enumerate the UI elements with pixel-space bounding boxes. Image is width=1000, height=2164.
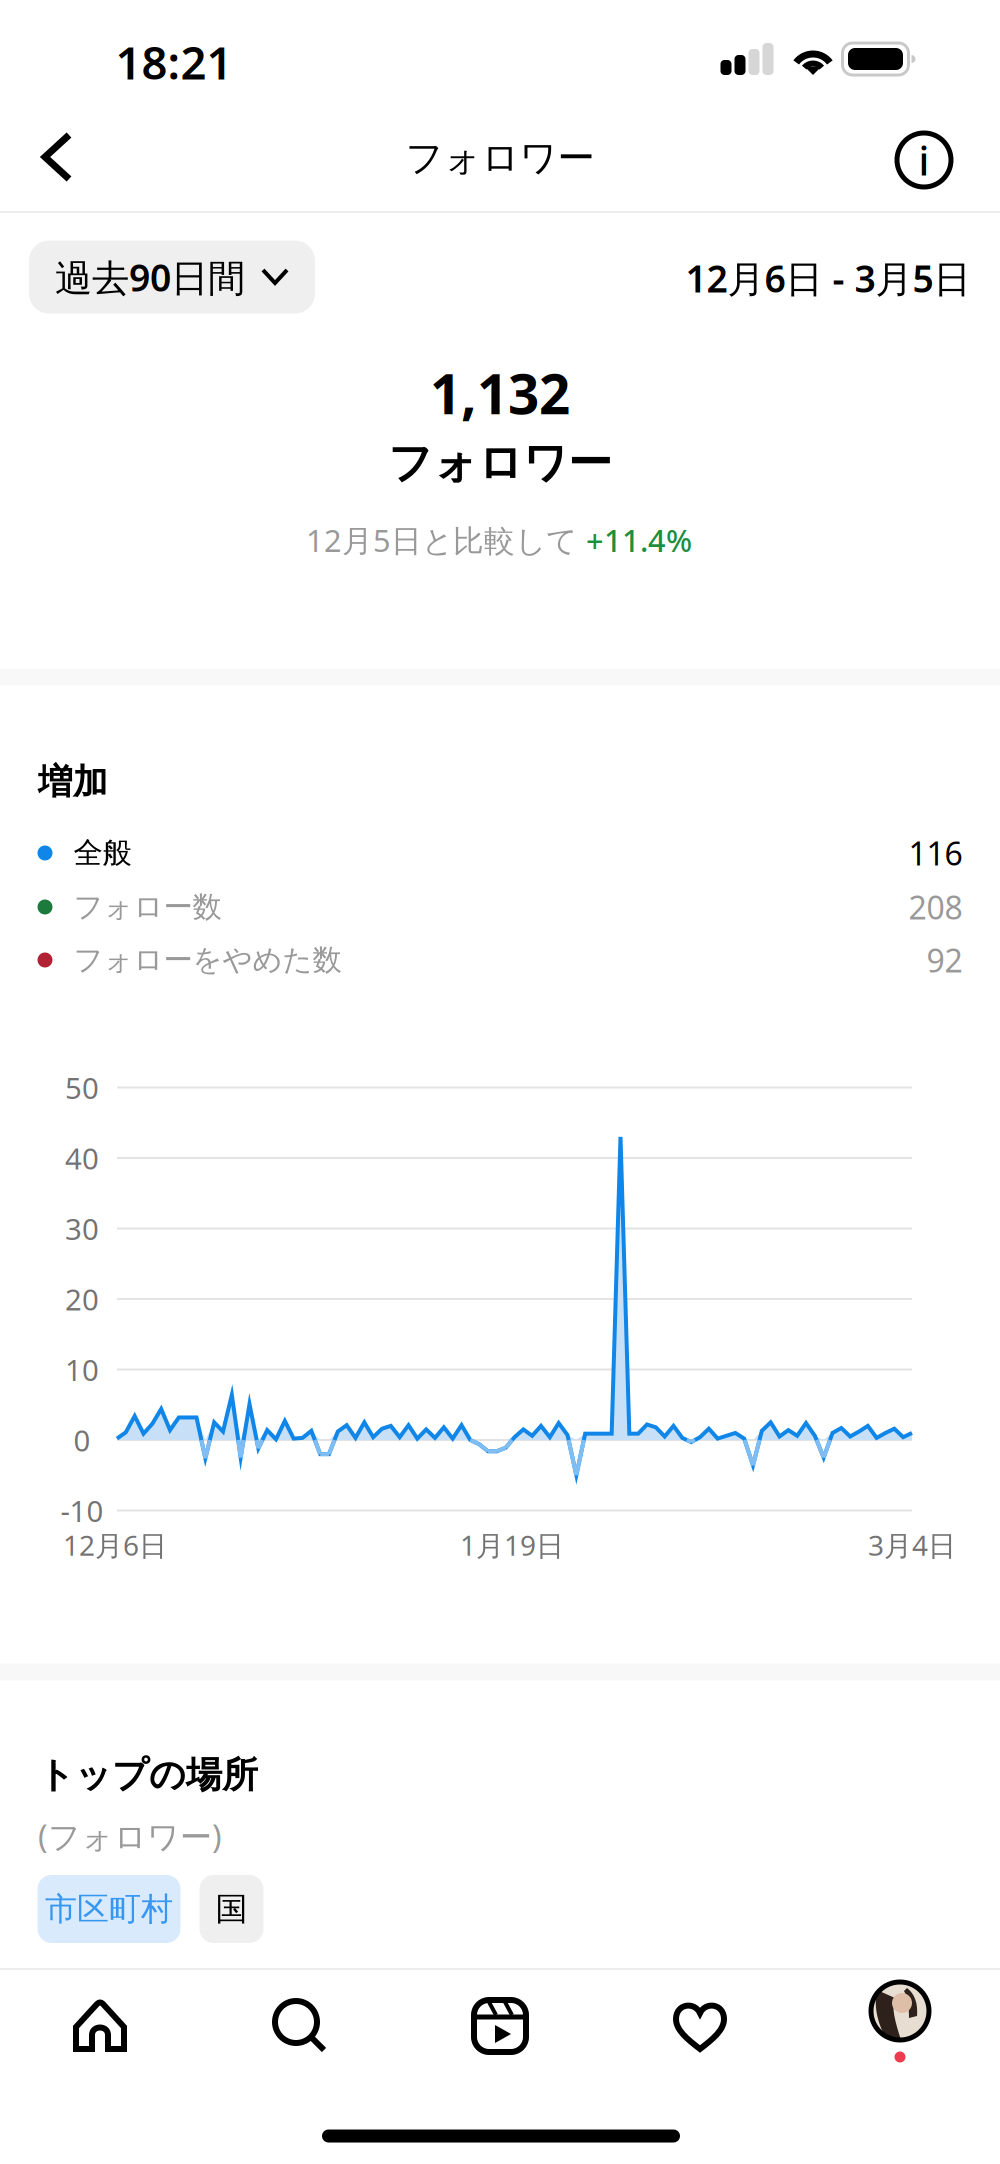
staticText: 92 xyxy=(926,939,962,981)
staticText: 12月6日 - 3月5日 xyxy=(685,253,970,303)
staticText: 208 xyxy=(908,886,962,928)
staticText: 過去90日間 xyxy=(55,252,245,302)
button[interactable]: Search xyxy=(200,1978,400,2074)
staticText: 10 xyxy=(65,1350,99,1389)
staticText: 116 xyxy=(908,832,962,874)
staticText: 全般 xyxy=(73,835,131,871)
staticText: 1,132 xyxy=(430,357,570,429)
button[interactable]: 国 xyxy=(199,1875,263,1943)
staticText: 40 xyxy=(65,1138,99,1177)
button[interactable]: 市区町村 xyxy=(37,1875,180,1943)
staticText: トップの場所 xyxy=(38,1753,258,1797)
staticText: 0 xyxy=(73,1420,90,1459)
staticText: 市区町村 xyxy=(45,1889,173,1929)
staticText: フォロワー xyxy=(388,436,612,490)
staticText: 12月6日 xyxy=(63,1526,167,1564)
staticText: 12月5日と比較して xyxy=(306,520,577,560)
button[interactable]: Profile xyxy=(800,1978,1000,2074)
button[interactable]: Home xyxy=(0,1978,200,2074)
staticText: フォロワー xyxy=(405,135,594,181)
staticText: 50 xyxy=(65,1068,99,1107)
staticText: -10 xyxy=(60,1491,103,1530)
staticText: 18:21 xyxy=(115,32,232,92)
staticText: フォローをやめた数 xyxy=(73,942,341,978)
staticText: +11.4% xyxy=(586,520,692,560)
staticText: (フォロワー) xyxy=(38,1815,222,1857)
staticText: 20 xyxy=(65,1279,99,1318)
staticText: 30 xyxy=(65,1209,99,1248)
staticText: i xyxy=(918,133,929,186)
staticText: フォロー数 xyxy=(73,889,221,925)
staticText: 国 xyxy=(215,1889,247,1929)
button[interactable]: Information xyxy=(876,112,972,208)
staticText: 3月4日 xyxy=(868,1526,956,1564)
staticText: 増加 xyxy=(38,761,108,803)
button[interactable]: Reels xyxy=(400,1978,600,2074)
button[interactable]: Back xyxy=(0,100,114,214)
staticText: 1月19日 xyxy=(460,1526,564,1564)
button[interactable]: 過去90日間 xyxy=(29,240,315,313)
button[interactable]: Activity xyxy=(600,1978,800,2074)
